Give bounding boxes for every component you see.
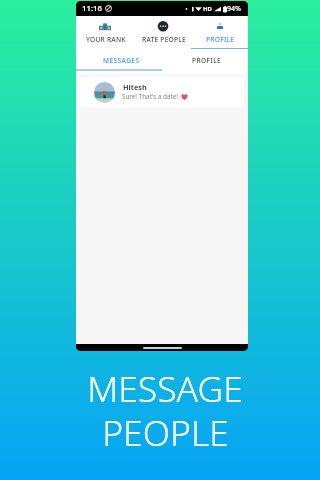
button[interactable]: PROFILE bbox=[162, 49, 248, 69]
staticText: RATE PEOPLE bbox=[142, 35, 186, 44]
staticText: HD bbox=[203, 5, 212, 13]
staticText: PROFILE bbox=[192, 56, 222, 65]
staticText: PEOPLE bbox=[102, 408, 229, 456]
staticText: MESSAGE bbox=[87, 364, 243, 412]
staticText: MESSAGES bbox=[103, 56, 140, 65]
staticText: PROFILE bbox=[206, 35, 235, 44]
button[interactable]: RATE PEOPLE bbox=[134, 16, 191, 49]
button[interactable]: Hitesh bbox=[80, 77, 244, 107]
staticText: 11:16 bbox=[82, 3, 102, 14]
staticText: 94% bbox=[227, 4, 241, 14]
button[interactable]: YOUR RANK bbox=[76, 16, 134, 49]
staticText: YOUR RANK bbox=[86, 35, 126, 44]
staticText: Hitesh bbox=[123, 82, 147, 92]
staticText: Sure! That's a date! bbox=[122, 92, 179, 101]
button[interactable]: MESSAGES bbox=[76, 49, 162, 69]
button[interactable]: PROFILE bbox=[191, 16, 248, 49]
